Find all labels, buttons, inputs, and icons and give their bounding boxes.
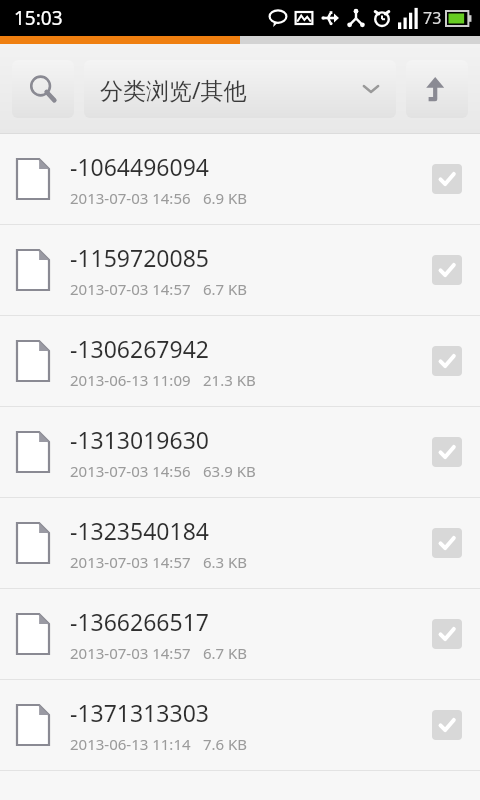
staticText: 2013-07-03 14:56 [70, 188, 191, 208]
button[interactable]: -1159720085 [0, 225, 480, 315]
staticText: 分类浏览/其他 [100, 74, 247, 105]
staticText: 2013-07-03 14:56 [70, 461, 191, 481]
staticText: 73 [423, 7, 442, 29]
staticText: 6.3 KB [203, 552, 248, 572]
button[interactable]: -1064496094 [0, 134, 480, 224]
button[interactable]: Up one level [406, 60, 468, 118]
button[interactable]: Search [12, 60, 74, 118]
staticText: 2013-06-13 11:09 [70, 370, 191, 390]
button[interactable]: -1306267942 [0, 316, 480, 406]
staticText: 6.9 KB [203, 188, 248, 208]
button[interactable]: Select file [432, 346, 462, 376]
button[interactable]: 分类浏览/其他 [84, 60, 396, 118]
staticText: 6.7 KB [203, 279, 248, 299]
staticText: -1064496094 [70, 151, 209, 182]
staticText: -1366266517 [70, 606, 209, 637]
button[interactable]: Select file [432, 437, 462, 467]
button[interactable]: Select file [432, 710, 462, 740]
staticText: 21.3 KB [203, 370, 256, 390]
staticText: 6.7 KB [203, 643, 248, 663]
staticText: 2013-07-03 14:57 [70, 643, 191, 663]
button[interactable]: -1313019630 [0, 407, 480, 497]
button[interactable]: Select file [432, 164, 462, 194]
staticText: -1323540184 [70, 515, 209, 546]
staticText: -1313019630 [70, 424, 209, 455]
button[interactable]: Select file [432, 255, 462, 285]
staticText: 7.6 KB [203, 734, 248, 754]
staticText: 2013-07-03 14:57 [70, 279, 191, 299]
staticText: 15:03 [14, 5, 63, 31]
staticText: -1159720085 [70, 242, 209, 273]
staticText: -1371313303 [70, 697, 209, 728]
button[interactable]: -1366266517 [0, 589, 480, 679]
button[interactable]: -1323540184 [0, 498, 480, 588]
staticText: 63.9 KB [203, 461, 256, 481]
staticText: 2013-07-03 14:57 [70, 552, 191, 572]
button[interactable]: Select file [432, 619, 462, 649]
button[interactable]: -1371313303 [0, 680, 480, 770]
staticText: -1306267942 [70, 333, 209, 364]
staticText: 2013-06-13 11:14 [70, 734, 191, 754]
button[interactable]: Select file [432, 528, 462, 558]
